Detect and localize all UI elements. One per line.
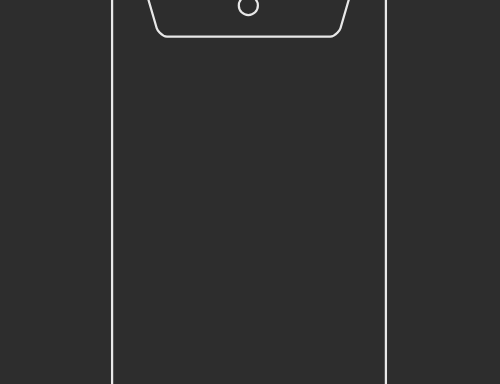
button[interactable]: Phone device outline (111, 0, 387, 384)
